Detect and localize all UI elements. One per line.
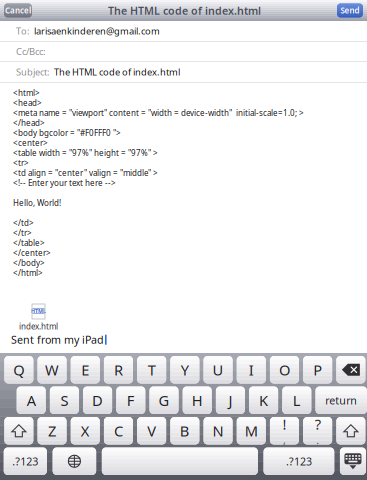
button[interactable]: L	[282, 386, 311, 414]
staticText: T	[148, 360, 156, 379]
button[interactable]: Shift	[336, 417, 365, 444]
button[interactable]: G	[149, 386, 178, 414]
staticText: </body>	[13, 258, 45, 268]
staticText: V	[147, 421, 156, 440]
staticText: <head>	[13, 98, 42, 108]
button[interactable]: O	[270, 356, 299, 383]
button[interactable]: return	[315, 386, 367, 414]
staticText: <meta name = "viewport" content = "width…	[13, 108, 304, 118]
staticText: H	[192, 390, 203, 410]
staticText: Q	[13, 360, 24, 379]
staticText: .?123	[12, 454, 38, 468]
button[interactable]: V	[137, 417, 166, 444]
staticText: I	[249, 360, 254, 379]
staticText: <tr>	[13, 158, 29, 168]
staticText: <body bgcolor = "#F0FFF0 ">	[13, 128, 121, 138]
button[interactable]: Y	[170, 356, 199, 383]
staticText: </center>	[13, 248, 51, 258]
button[interactable]: !	[270, 417, 299, 444]
staticText: To:	[16, 25, 30, 37]
button[interactable]: U	[203, 356, 232, 383]
staticText: ,	[283, 433, 286, 447]
button[interactable]: Hide keyboard	[340, 447, 366, 475]
staticText: N	[212, 421, 223, 440]
staticText: Y	[181, 360, 189, 379]
staticText: ?	[315, 414, 321, 434]
staticText: <table width = "97%" height = "97%" >	[13, 148, 158, 158]
staticText: C	[114, 421, 123, 440]
staticText: </td>	[13, 218, 34, 228]
staticText: E	[81, 360, 89, 379]
button[interactable]: C	[104, 417, 133, 444]
staticText: </html>	[13, 268, 43, 278]
staticText: Sent from my iPad	[11, 333, 104, 347]
staticText: <!-- Enter your text here -->	[13, 178, 116, 188]
staticText: G	[158, 390, 169, 410]
button[interactable]: Next keyboard	[53, 447, 96, 475]
button[interactable]: N	[203, 417, 232, 444]
staticText: K	[259, 390, 268, 410]
staticText: The HTML code of index.html	[108, 3, 261, 18]
button[interactable]: Q	[4, 356, 33, 383]
button[interactable]: R	[104, 356, 133, 383]
staticText: .	[316, 433, 319, 447]
staticText: !	[282, 414, 286, 434]
staticText: </head>	[13, 118, 45, 128]
button[interactable]: Delete	[336, 356, 365, 383]
staticText: J	[228, 390, 232, 410]
staticText: Subject:	[16, 66, 50, 78]
staticText: A	[27, 390, 36, 410]
staticText: M	[245, 421, 258, 440]
staticText: Z	[48, 421, 56, 440]
staticText: Hello, World!	[13, 198, 61, 208]
staticText: S	[60, 390, 68, 410]
staticText: HTML	[31, 307, 46, 315]
button[interactable]: Cancel	[4, 3, 32, 17]
button[interactable]: H	[183, 386, 212, 414]
button[interactable]	[102, 447, 258, 475]
button[interactable]: .?123	[264, 447, 334, 475]
staticText: L	[293, 390, 301, 410]
button[interactable]: F	[116, 386, 145, 414]
staticText: <html>	[13, 88, 40, 98]
staticText: D	[92, 390, 103, 410]
button[interactable]: E	[71, 356, 100, 383]
button[interactable]: K	[249, 386, 278, 414]
button[interactable]: S	[50, 386, 79, 414]
button[interactable]: X	[71, 417, 100, 444]
button[interactable]: I	[237, 356, 266, 383]
button[interactable]: Z	[38, 417, 67, 444]
staticText: </tr>	[13, 228, 32, 238]
staticText: <td align = "center" valign = "middle" >	[13, 168, 158, 178]
button[interactable]: J	[216, 386, 245, 414]
staticText: Send	[340, 5, 359, 16]
button[interactable]: M	[237, 417, 266, 444]
staticText: larisaenkinderen@gmail.com	[34, 25, 160, 37]
button[interactable]: .?123	[4, 447, 47, 475]
button[interactable]: P	[303, 356, 332, 383]
staticText: .?123	[286, 454, 312, 468]
staticText: </table>	[13, 238, 45, 248]
button[interactable]: ?	[303, 417, 332, 444]
staticText: B	[180, 421, 190, 440]
staticText: R	[114, 360, 123, 379]
staticText: U	[212, 360, 223, 379]
staticText: F	[127, 390, 135, 410]
staticText: The HTML code of index.html	[54, 66, 180, 78]
staticText: Cc/Bcc:	[16, 45, 46, 58]
staticText: <center>	[13, 138, 48, 148]
button[interactable]: Shift	[4, 417, 33, 444]
staticText: O	[279, 360, 290, 379]
staticText: W	[45, 360, 59, 379]
staticText: return	[325, 393, 357, 407]
button[interactable]: A	[17, 386, 46, 414]
button[interactable]: W	[38, 356, 67, 383]
button[interactable]: B	[170, 417, 199, 444]
staticText: P	[313, 360, 322, 379]
staticText: X	[81, 421, 90, 440]
button[interactable]: D	[83, 386, 112, 414]
staticText: index.html	[19, 321, 58, 332]
staticText: Cancel	[5, 5, 31, 16]
button[interactable]: Send	[337, 3, 363, 17]
button[interactable]: T	[137, 356, 166, 383]
